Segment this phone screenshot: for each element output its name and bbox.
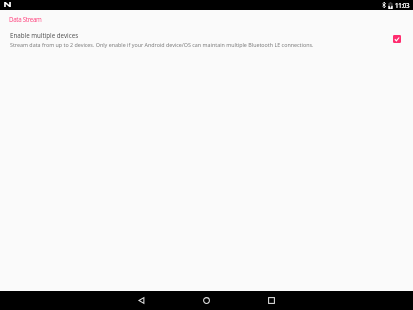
staticText: Enable multiple devices bbox=[10, 31, 79, 39]
staticText: Stream data from up to 2 devices. Only e… bbox=[10, 41, 314, 48]
button[interactable]: Recents bbox=[239, 291, 304, 310]
button[interactable]: Home bbox=[174, 291, 239, 310]
other: Notification bbox=[4, 2, 11, 7]
button[interactable]: Back bbox=[109, 291, 174, 310]
button[interactable]: Enable multiple devices bbox=[0, 27, 413, 52]
button[interactable]: Enable multiple devices checkbox bbox=[393, 35, 401, 43]
staticText: 11:03 bbox=[395, 1, 410, 9]
staticText: Data Stream bbox=[9, 15, 42, 23]
